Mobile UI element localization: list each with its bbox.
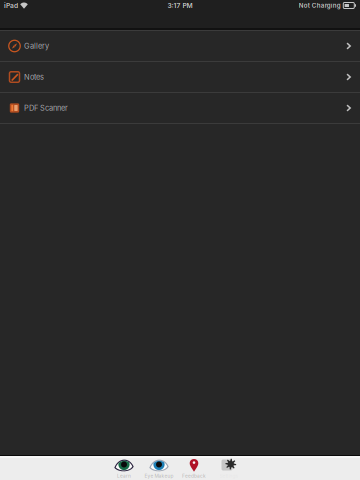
button[interactable]: Learn [106, 458, 141, 480]
staticText: iPad [4, 1, 18, 10]
staticText: Learn [117, 473, 131, 479]
staticText: Eye Makeup [144, 473, 173, 479]
staticText: Not Charging [299, 2, 341, 9]
staticText: Notes [24, 72, 44, 81]
button[interactable]: Settings [211, 458, 246, 480]
staticText: Feedback [182, 473, 206, 479]
button[interactable]: PDF Scanner [0, 93, 360, 124]
staticText: PDF Scanner [24, 103, 68, 112]
staticText: Gallery [24, 41, 49, 50]
button[interactable]: Gallery [0, 31, 360, 62]
button[interactable]: Eye Makeup [141, 458, 176, 480]
button[interactable]: Feedback [176, 458, 211, 480]
button[interactable]: Notes [0, 62, 360, 93]
staticText: 3:17 PM [167, 1, 192, 10]
